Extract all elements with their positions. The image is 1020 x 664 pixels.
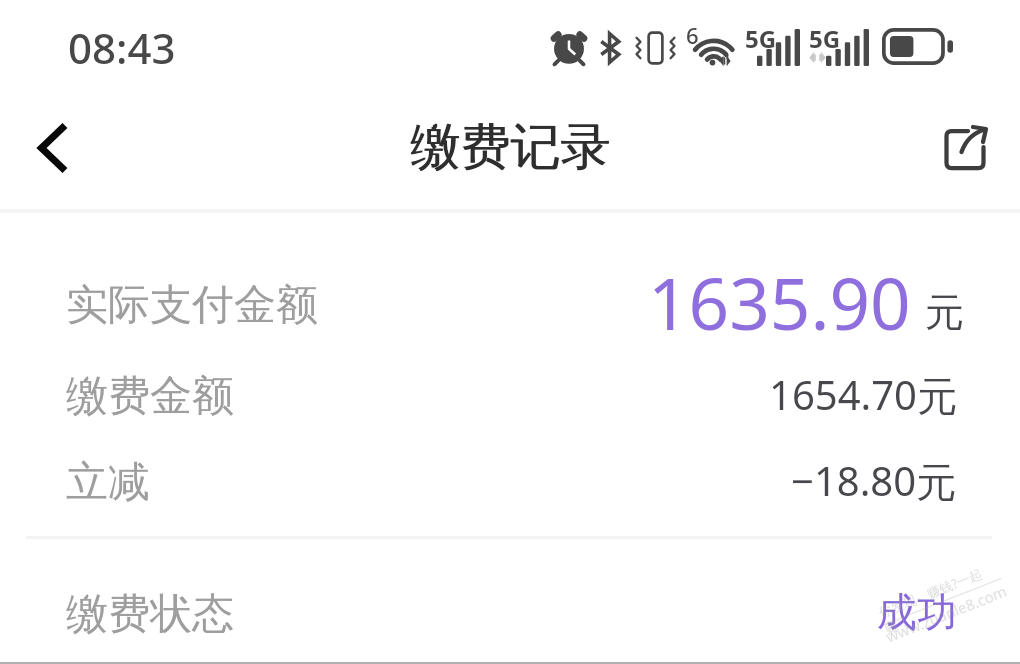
staticText: −18.80元 bbox=[791, 453, 957, 508]
staticText: 实际支付金额 bbox=[66, 279, 318, 332]
button[interactable]: 缴费金额 bbox=[0, 350, 1020, 438]
button[interactable]: 立减 bbox=[0, 436, 1020, 524]
staticText: 08:43 bbox=[68, 19, 176, 76]
staticText: 缴费记录 bbox=[411, 116, 611, 179]
staticText: 5G bbox=[809, 22, 841, 55]
staticText: 元 bbox=[925, 288, 964, 337]
staticText: 缴费金额 bbox=[66, 370, 234, 423]
staticText: 立减 bbox=[66, 456, 150, 509]
button[interactable]: Share bbox=[924, 108, 1004, 188]
staticText: 缴费状态 bbox=[66, 588, 234, 641]
button[interactable]: 缴费状态 bbox=[0, 568, 1020, 656]
button[interactable]: 实际支付金额 bbox=[0, 259, 1020, 347]
staticText: www.zuanle8.com bbox=[883, 580, 1010, 646]
staticText: 缴费记录 bbox=[410, 116, 610, 179]
staticText: 成功 bbox=[877, 587, 957, 637]
staticText: 1654.70元 bbox=[769, 367, 957, 422]
staticText: 你发现，赚钱?一起赚！ bbox=[876, 557, 1010, 637]
staticText: 6 bbox=[686, 20, 699, 50]
staticText: 1635.90 bbox=[648, 254, 911, 342]
staticText: 5G bbox=[745, 22, 777, 55]
button[interactable]: Back bbox=[7, 103, 97, 193]
